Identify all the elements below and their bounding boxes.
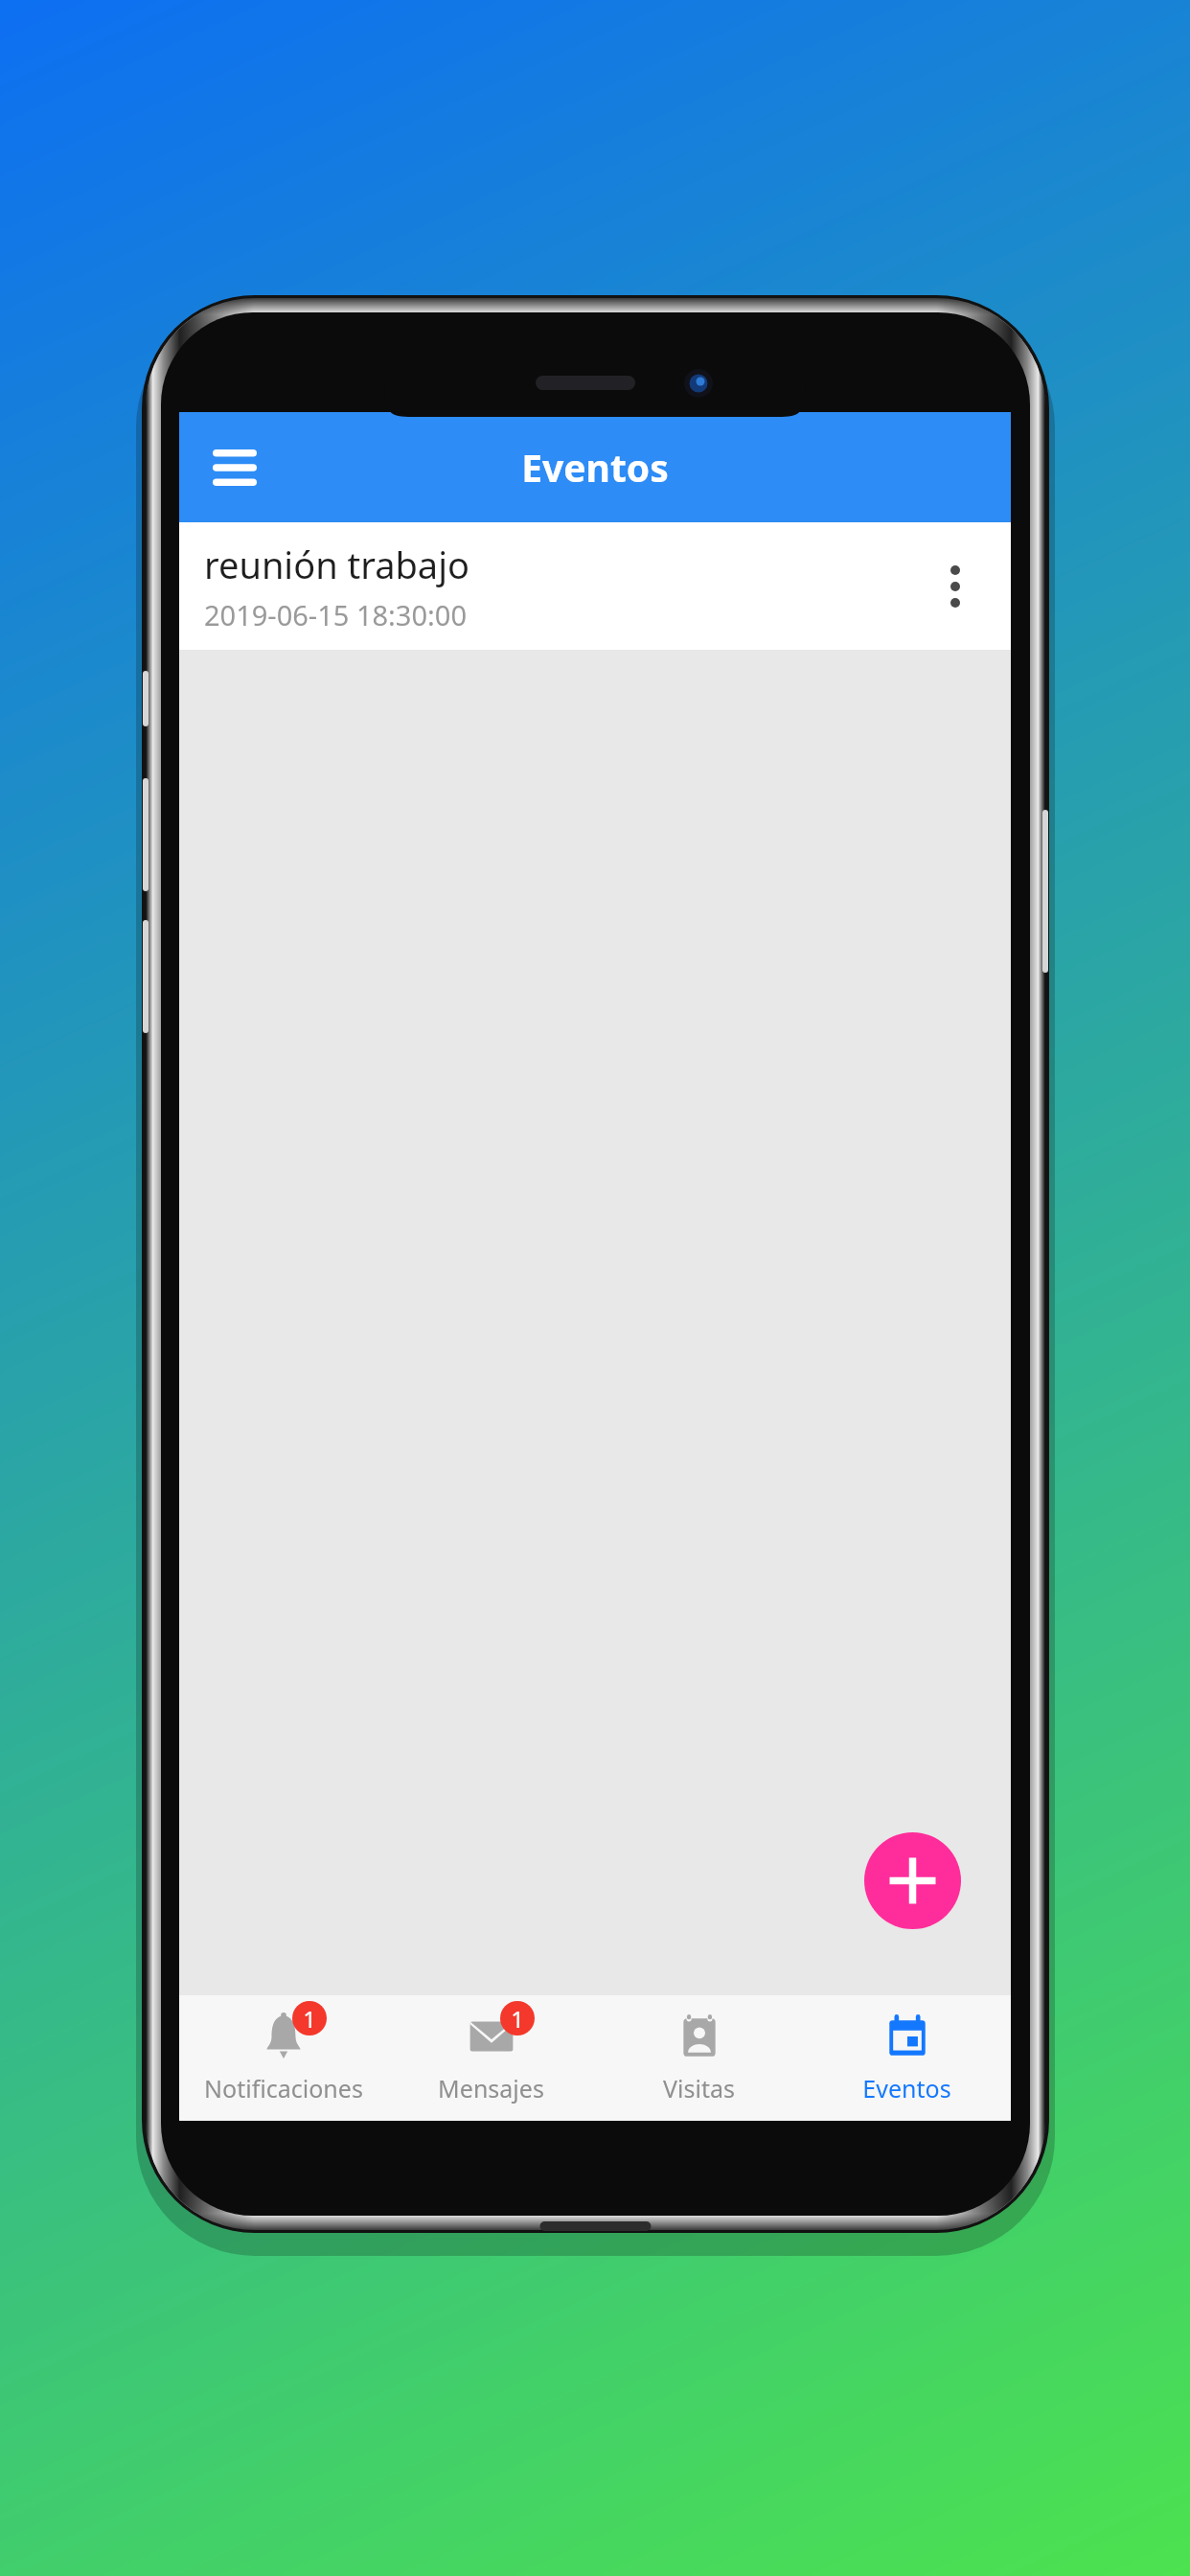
button[interactable]: 1 (179, 1995, 387, 2121)
staticText: Eventos (521, 442, 669, 493)
staticText: 1 (303, 2003, 316, 2035)
staticText: 2019-06-15 18:30:00 (204, 596, 467, 633)
staticText: reunión trabajo (204, 540, 469, 589)
button[interactable]: Eventos (803, 1995, 1011, 2121)
staticText: Mensajes (438, 2072, 544, 2104)
button[interactable]: Menú (200, 433, 269, 502)
button[interactable]: Más opciones (921, 552, 990, 621)
button[interactable]: Añadir evento (864, 1832, 961, 1929)
staticText: Visitas (663, 2072, 735, 2104)
staticText: Notificaciones (204, 2072, 363, 2104)
staticText: Eventos (862, 2072, 951, 2104)
button[interactable]: Visitas (595, 1995, 803, 2121)
button[interactable]: 1 (387, 1995, 595, 2121)
button[interactable]: reunión trabajo (179, 522, 1011, 650)
staticText: 1 (511, 2003, 524, 2035)
